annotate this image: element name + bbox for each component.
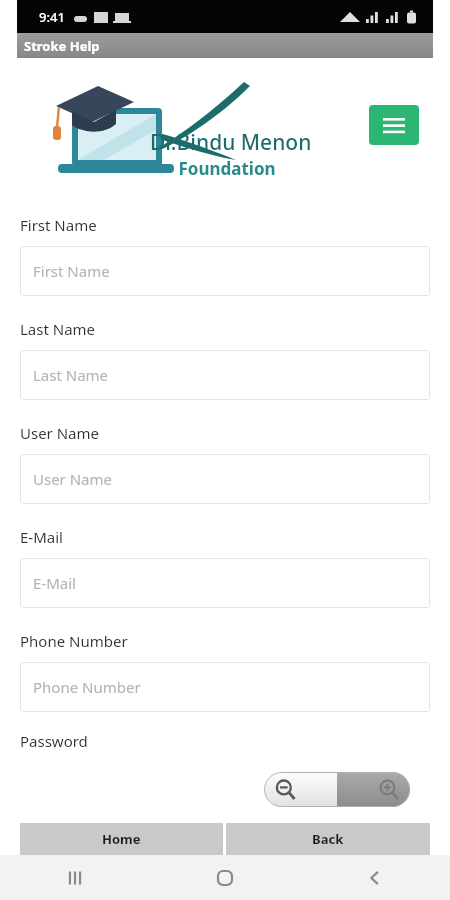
staticText: Home [102, 830, 141, 848]
staticText: Dr.Bindu Menon [150, 128, 312, 157]
staticText: Phone Number [33, 677, 141, 697]
staticText: Phone Number [20, 631, 128, 651]
button[interactable]: Home [150, 855, 300, 900]
staticText: User Name [20, 423, 100, 443]
button[interactable]: First Name [20, 246, 430, 296]
staticText: E-Mail [20, 527, 63, 547]
button[interactable]: Recent apps [0, 855, 150, 900]
staticText: Back [312, 830, 344, 848]
staticText: First Name [33, 261, 110, 281]
button[interactable]: Phone Number [20, 662, 430, 712]
button[interactable]: User Name [20, 454, 430, 504]
staticText: Last Name [20, 319, 96, 339]
button[interactable]: E-Mail [20, 558, 430, 608]
button[interactable]: Zoom in [337, 772, 410, 807]
button[interactable]: Back [226, 823, 430, 855]
staticText: Password [20, 731, 88, 751]
button[interactable]: Open menu [369, 105, 419, 145]
button[interactable]: Zoom out [264, 772, 337, 807]
staticText: First Name [20, 215, 97, 235]
staticText: Last Name [33, 365, 109, 385]
button[interactable]: Last Name [20, 350, 430, 400]
staticText: 9:41 [39, 8, 65, 26]
staticText: E-Mail [33, 573, 76, 593]
staticText: Foundation [150, 157, 304, 180]
staticText: Stroke Help [24, 37, 100, 55]
button[interactable]: Home [20, 823, 223, 855]
staticText: User Name [33, 469, 113, 489]
button[interactable]: Back [300, 855, 450, 900]
